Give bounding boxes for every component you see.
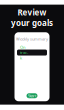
- staticText: On track: [20, 45, 28, 60]
- staticText: Start: [28, 93, 36, 98]
- staticText: Review: [17, 7, 46, 18]
- staticText: your goals: [11, 18, 53, 28]
- staticText: Weekly summary: [16, 36, 48, 41]
